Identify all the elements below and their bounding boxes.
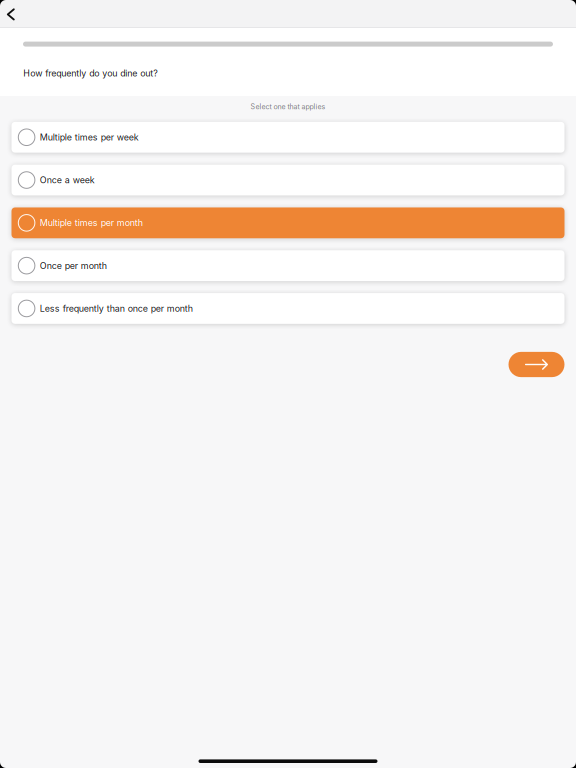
staticText: Once a week: [40, 175, 95, 185]
button[interactable]: Less frequently than once per month: [11, 293, 564, 324]
staticText: How frequently do you dine out?: [23, 68, 158, 79]
button[interactable]: Next: [508, 352, 564, 377]
staticText: Multiple times per week: [40, 132, 139, 143]
staticText: Less frequently than once per month: [40, 303, 193, 314]
staticText: Multiple times per month: [40, 217, 143, 228]
button[interactable]: Multiple times per month: [11, 207, 564, 238]
button[interactable]: Once a week: [11, 165, 564, 195]
staticText: Select one that applies: [250, 102, 325, 111]
button[interactable]: Once per month: [11, 250, 564, 281]
button[interactable]: Back: [0, 0, 34, 27]
staticText: Once per month: [40, 260, 107, 271]
button[interactable]: Multiple times per week: [11, 122, 564, 153]
